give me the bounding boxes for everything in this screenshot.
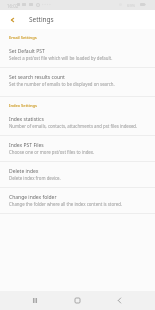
staticText: Delete index bbox=[9, 168, 39, 175]
button[interactable]: Index statistics bbox=[0, 110, 155, 136]
button[interactable]: Set Default PST bbox=[0, 42, 155, 68]
staticText: Settings bbox=[29, 15, 54, 24]
staticText: Set Default PST bbox=[9, 48, 45, 55]
staticText: Change the folder where all the index co… bbox=[9, 201, 123, 207]
staticText: Choose one or more pst/ost files to inde… bbox=[9, 149, 95, 155]
staticText: 16:02 bbox=[7, 3, 19, 9]
staticText: Index Settings bbox=[9, 103, 38, 109]
button[interactable]: Home bbox=[57, 291, 97, 310]
staticText: Set the number of emails to be displayed… bbox=[9, 81, 115, 87]
staticText: Index PST Files bbox=[9, 142, 44, 149]
staticText: Number of emails, contacts, attachments … bbox=[9, 123, 138, 129]
staticText: Index statistics bbox=[9, 116, 44, 123]
staticText: Delete index from device. bbox=[9, 175, 61, 181]
staticText: Select a pst/ost file which will be load… bbox=[9, 55, 113, 61]
staticText: Email Settings bbox=[9, 35, 37, 41]
staticText: Set search results count bbox=[9, 74, 65, 81]
staticText: 69% bbox=[127, 3, 136, 9]
button[interactable]: Delete index bbox=[0, 162, 155, 188]
button[interactable]: Back bbox=[99, 291, 139, 310]
button[interactable]: Change index folder bbox=[0, 188, 155, 214]
staticText: Change index folder bbox=[9, 194, 57, 201]
button[interactable]: Recent apps bbox=[15, 291, 55, 310]
button[interactable]: Back bbox=[0, 10, 24, 29]
button[interactable]: Index PST Files bbox=[0, 136, 155, 162]
button[interactable]: Set search results count bbox=[0, 68, 155, 97]
